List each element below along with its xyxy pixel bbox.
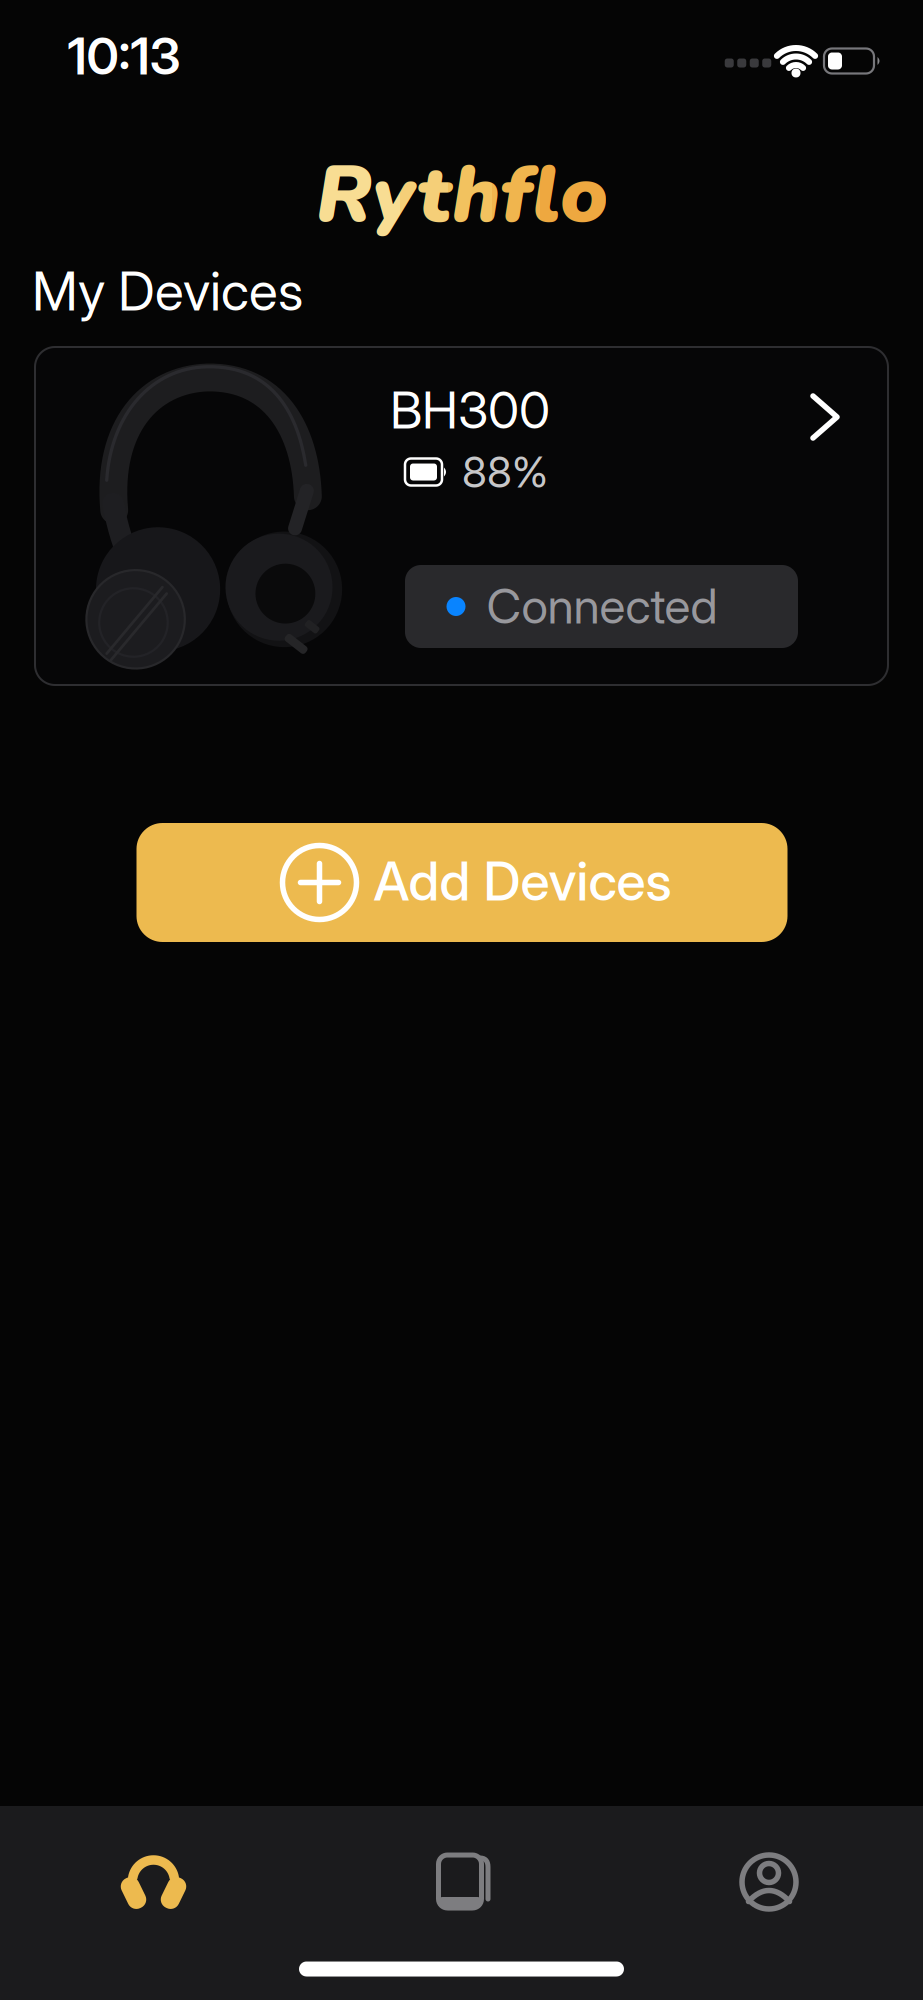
staticText: Rythflo: [316, 140, 608, 249]
staticText: 10:13: [67, 25, 180, 87]
staticText: Rythflo: [316, 140, 608, 249]
staticText: BH300: [390, 379, 550, 441]
staticText: My Devices: [32, 259, 303, 323]
button[interactable]: Add Devices: [136, 823, 787, 942]
staticText: 88%: [462, 446, 548, 498]
staticText: Add Devices: [373, 849, 671, 913]
staticText: Connected: [486, 577, 717, 635]
staticText: Rythflo: [316, 140, 608, 249]
staticText: Rythflo: [316, 140, 608, 249]
button[interactable]: BH300: [35, 347, 888, 685]
button[interactable]: Connected: [405, 565, 798, 648]
staticText: Rythflo: [316, 140, 608, 249]
button[interactable]: Guide: [307, 1827, 615, 1937]
button[interactable]: Profile: [615, 1827, 923, 1937]
button[interactable]: Devices: [0, 1827, 307, 1937]
